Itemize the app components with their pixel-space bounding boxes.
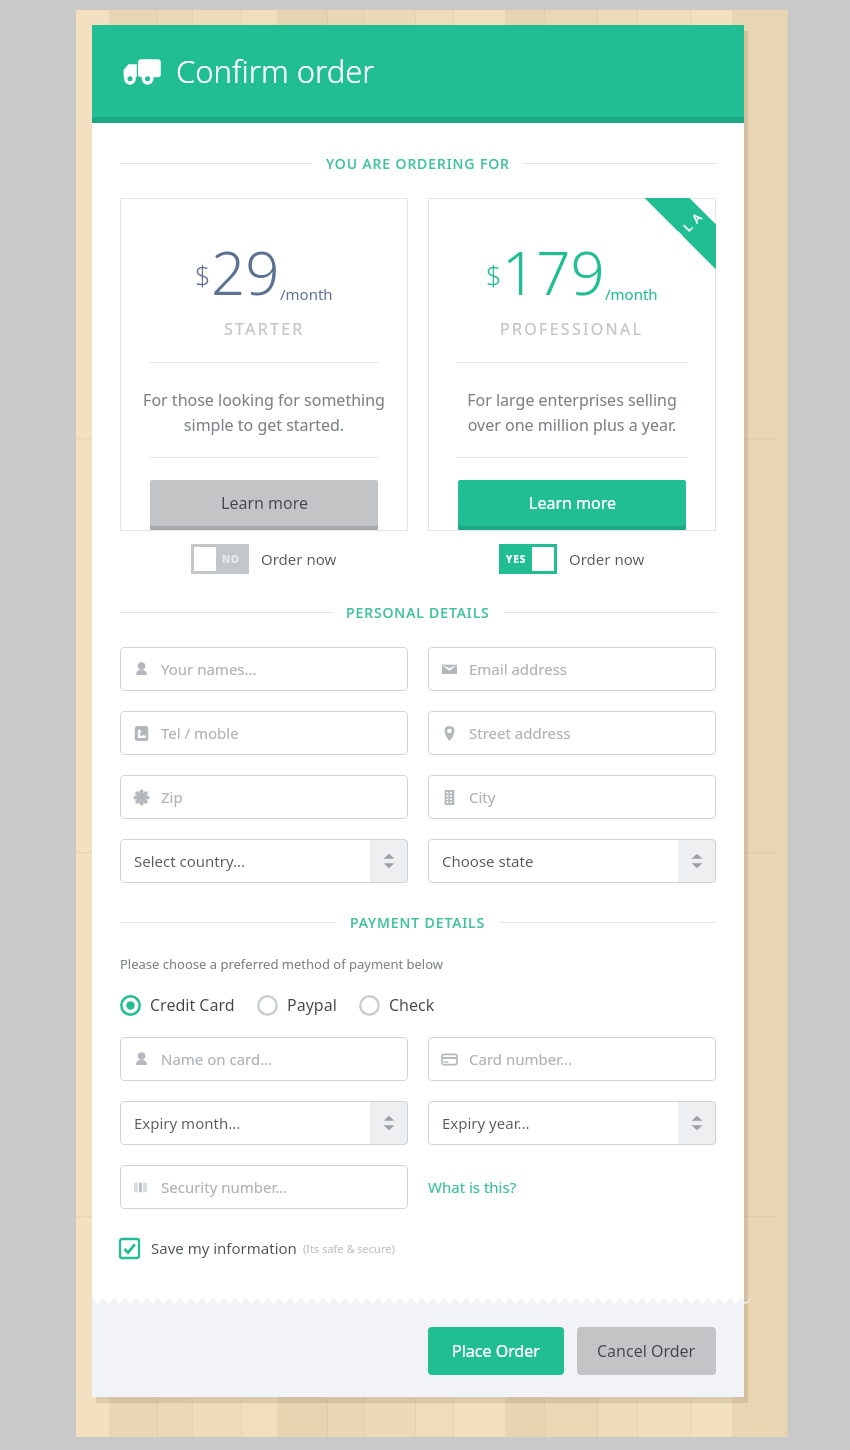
staticText: YES <box>506 552 527 566</box>
staticText: PAYMENT DETAILS <box>350 913 486 932</box>
button[interactable]: Security number... <box>120 1165 408 1209</box>
staticText: Card number... <box>469 1049 573 1069</box>
button[interactable]: Card number... <box>428 1037 716 1081</box>
staticText: Check <box>389 994 435 1016</box>
staticText: STARTER <box>224 318 305 340</box>
staticText: Paypal <box>287 994 337 1016</box>
button[interactable]: Save my information <box>120 1238 716 1258</box>
button[interactable]: $ <box>120 198 408 531</box>
staticText: Cancel Order <box>597 1340 696 1362</box>
staticText: Security number... <box>161 1177 288 1197</box>
staticText: $ <box>195 257 211 294</box>
staticText: Learn more <box>529 492 616 514</box>
staticText: P O P U L A R <box>640 198 715 273</box>
button[interactable]: Check <box>359 994 435 1016</box>
staticText: Select country... <box>134 851 370 871</box>
staticText: Email address <box>469 659 568 679</box>
staticText: For those looking for something simple t… <box>143 389 385 435</box>
button[interactable]: Select country... <box>120 839 408 883</box>
staticText: 179 <box>502 231 605 313</box>
staticText: Tel / moble <box>161 723 239 743</box>
button[interactable]: Expiry year... <box>428 1101 716 1145</box>
button[interactable]: Expiry month... <box>120 1101 408 1145</box>
other: Delivery <box>122 57 162 85</box>
staticText: Your names... <box>161 659 257 679</box>
staticText: PROFESSIONAL <box>500 318 644 340</box>
staticText: Street address <box>469 723 571 743</box>
staticText: Learn more <box>221 492 308 514</box>
button[interactable]: Choose state <box>428 839 716 883</box>
button[interactable]: Learn more <box>150 480 378 531</box>
staticText: Place Order <box>452 1340 540 1362</box>
staticText: Please choose a preferred method of paym… <box>120 955 444 973</box>
button[interactable]: Zip <box>120 775 408 819</box>
button[interactable]: Cancel Order <box>577 1327 716 1375</box>
staticText: Expiry month... <box>134 1113 370 1133</box>
button[interactable]: Paypal <box>257 994 337 1016</box>
staticText: Name on card... <box>161 1049 273 1069</box>
button[interactable]: Name on card... <box>120 1037 408 1081</box>
button[interactable]: Tel / moble <box>120 711 408 755</box>
button[interactable]: What is this? <box>428 1173 517 1201</box>
button[interactable]: Credit Card <box>120 994 235 1016</box>
staticText: /month <box>280 284 333 304</box>
staticText: For large enterprises selling over one m… <box>467 389 677 435</box>
staticText: Order now <box>261 549 337 569</box>
staticText: Choose state <box>442 851 678 871</box>
button[interactable]: Street address <box>428 711 716 755</box>
staticText: $ <box>486 257 502 294</box>
staticText: Expiry year... <box>442 1113 678 1133</box>
staticText: City <box>469 787 496 807</box>
staticText: PERSONAL DETAILS <box>346 603 490 622</box>
staticText: /month <box>605 284 658 304</box>
button[interactable]: Place Order <box>428 1327 564 1375</box>
staticText: (Its safe & secure) <box>303 1241 395 1256</box>
button[interactable]: NO <box>191 544 337 574</box>
button[interactable]: Email address <box>428 647 716 691</box>
staticText: YOU ARE ORDERING FOR <box>326 154 510 173</box>
staticText: 29 <box>211 231 280 313</box>
button[interactable]: YES <box>499 544 645 574</box>
staticText: Zip <box>161 787 183 807</box>
button[interactable]: Learn more <box>458 480 686 531</box>
button[interactable]: Your names... <box>120 647 408 691</box>
button[interactable]: $ <box>428 198 716 531</box>
staticText: Confirm order <box>176 50 375 92</box>
staticText: Save my information <box>151 1238 297 1258</box>
staticText: Order now <box>569 549 645 569</box>
staticText: Credit Card <box>150 994 235 1016</box>
staticText: NO <box>222 552 240 566</box>
button[interactable]: City <box>428 775 716 819</box>
